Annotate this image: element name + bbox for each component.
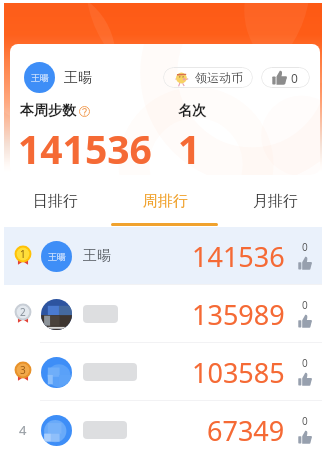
staticText: 135989 [192, 296, 285, 333]
button[interactable]: 2 [0, 285, 330, 343]
staticText: 103585 [192, 354, 285, 391]
staticText: 王暘 [48, 251, 66, 262]
staticText: 周排行 [143, 192, 188, 211]
staticText: 141536 [18, 122, 152, 175]
button[interactable]: 4 [0, 401, 330, 459]
staticText: 本周步数 [20, 102, 76, 120]
staticText: 0 [302, 240, 308, 254]
staticText: 王暘 [83, 247, 111, 265]
button[interactable]: 3 [0, 343, 330, 401]
staticText: 2 [20, 305, 26, 319]
button[interactable]: 日排行 [0, 186, 110, 216]
staticText: 领运动币 [195, 70, 243, 85]
button[interactable]: Like [261, 67, 310, 88]
staticText: 王暘 [64, 69, 92, 87]
staticText: 0 [302, 356, 308, 370]
button[interactable]: 月排行 [220, 186, 330, 216]
button[interactable]: 领运动币 [163, 67, 253, 88]
staticText: 3 [20, 363, 26, 377]
staticText: 4 [19, 421, 27, 439]
button[interactable]: Help [79, 106, 90, 117]
staticText: 名次 [178, 102, 206, 120]
staticText: 0 [302, 414, 308, 428]
staticText: 1 [178, 122, 201, 175]
staticText: 1 [20, 247, 26, 261]
staticText: 141536 [192, 238, 285, 275]
button[interactable]: 1 [0, 227, 330, 285]
staticText: 日排行 [33, 192, 78, 211]
button[interactable]: 周排行 [110, 186, 220, 216]
staticText: 月排行 [253, 192, 298, 211]
staticText: 王暘 [31, 72, 49, 83]
button[interactable]: Avatar [24, 62, 55, 93]
staticText: 0 [302, 298, 308, 312]
staticText: 0 [291, 70, 298, 86]
staticText: 67349 [207, 412, 285, 449]
